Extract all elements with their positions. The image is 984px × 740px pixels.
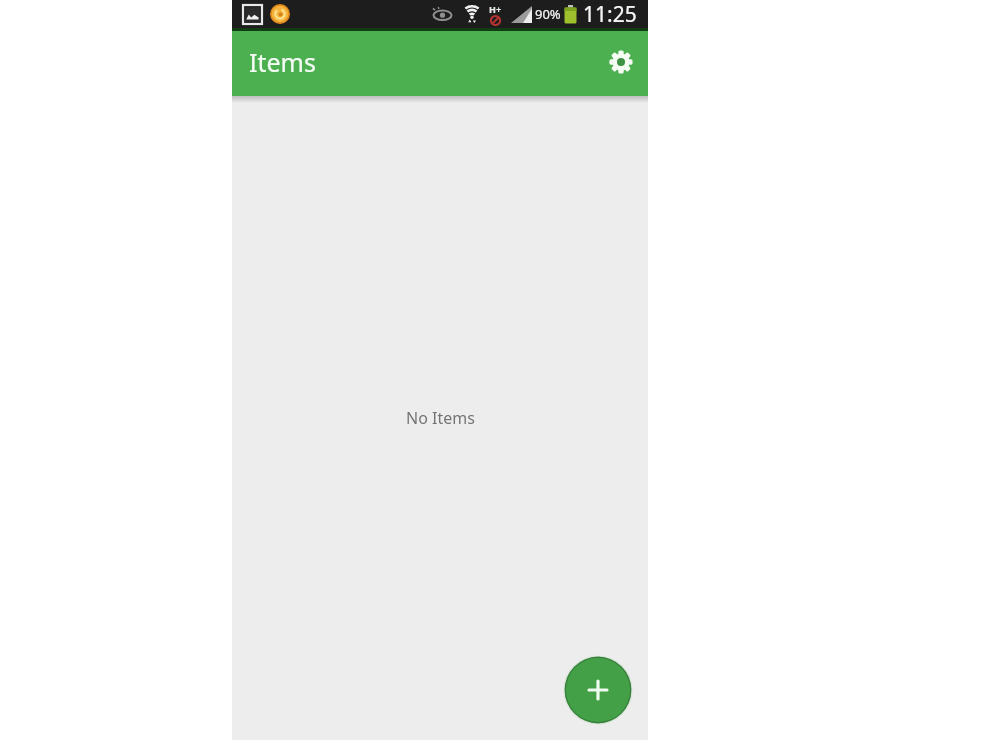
- button[interactable]: [563, 655, 633, 725]
- button[interactable]: [603, 44, 639, 80]
- staticText: No Items: [406, 407, 475, 429]
- staticText: 11:25: [583, 0, 637, 28]
- staticText: H+: [489, 3, 502, 15]
- staticText: 90%: [535, 5, 561, 23]
- staticText: Items: [249, 45, 316, 79]
